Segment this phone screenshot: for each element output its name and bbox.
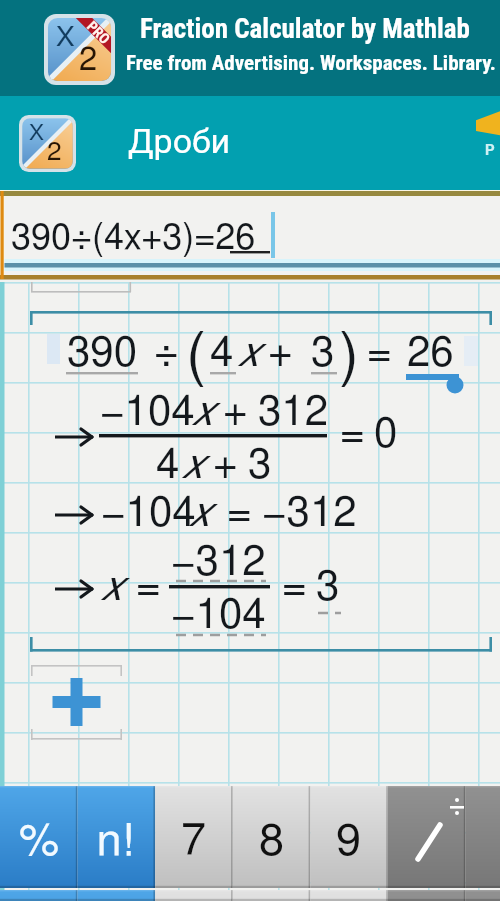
staticText: n!: [97, 819, 137, 864]
staticText: (: [186, 326, 206, 386]
staticText: +: [213, 444, 238, 486]
staticText: 4: [156, 444, 180, 486]
staticText: 3: [311, 332, 335, 374]
staticText: −104: [100, 391, 195, 433]
staticText: +: [223, 391, 248, 433]
staticText: Fraction Calculator by Mathlab: [140, 13, 470, 45]
staticText: P: [485, 141, 495, 159]
staticText: =: [367, 332, 392, 374]
staticText: ÷: [154, 332, 179, 374]
button[interactable]: Add new expression: [31, 665, 122, 739]
staticText: x: [100, 566, 121, 608]
staticText: 2: [79, 44, 98, 77]
button[interactable]: 390: [0, 282, 500, 786]
button[interactable]: /: [388, 786, 466, 888]
staticText: X: [56, 23, 75, 51]
staticText: %: [19, 819, 60, 864]
staticText: =: [227, 492, 252, 534]
staticText: x: [237, 332, 258, 374]
staticText: PRO: [84, 17, 114, 48]
button[interactable]: Pro version: [476, 107, 500, 167]
staticText: 3: [248, 444, 272, 486]
button[interactable]: X: [0, 0, 500, 96]
button[interactable]: more keys: [0, 890, 500, 901]
staticText: X: [29, 122, 44, 145]
staticText: 390÷(4x+3)=26: [11, 220, 256, 256]
staticText: x: [191, 391, 212, 433]
staticText: =: [136, 566, 161, 608]
staticText: ): [339, 326, 359, 386]
staticText: −104: [101, 492, 196, 534]
staticText: 390: [67, 332, 138, 374]
staticText: −104: [171, 594, 266, 636]
button[interactable]: 390÷(4x+3)=26: [0, 190, 500, 282]
staticText: −312: [262, 492, 357, 534]
staticText: 4: [210, 332, 234, 374]
staticText: x: [188, 492, 209, 534]
button[interactable]: n!: [78, 786, 156, 888]
button[interactable]: 7: [155, 786, 233, 888]
button[interactable]: App icon: [19, 115, 76, 172]
staticText: 9: [336, 819, 362, 864]
staticText: 2: [47, 139, 62, 165]
staticText: 26: [407, 332, 454, 374]
button[interactable]: 9: [310, 786, 388, 888]
staticText: Дроби: [128, 121, 231, 161]
button[interactable]: key: [466, 786, 500, 888]
staticText: +: [268, 332, 293, 374]
staticText: 3: [316, 566, 340, 608]
staticText: 8: [259, 819, 285, 864]
staticText: =: [282, 566, 307, 608]
staticText: 312: [258, 391, 329, 433]
staticText: 7: [181, 819, 207, 864]
button[interactable]: 8: [233, 786, 311, 888]
staticText: Free from Advertising. Workspaces. Libra…: [126, 51, 496, 76]
staticText: =: [340, 413, 365, 455]
staticText: x: [181, 444, 202, 486]
staticText: 0: [374, 413, 398, 455]
button[interactable]: %: [0, 786, 78, 888]
staticText: −312: [171, 541, 266, 583]
